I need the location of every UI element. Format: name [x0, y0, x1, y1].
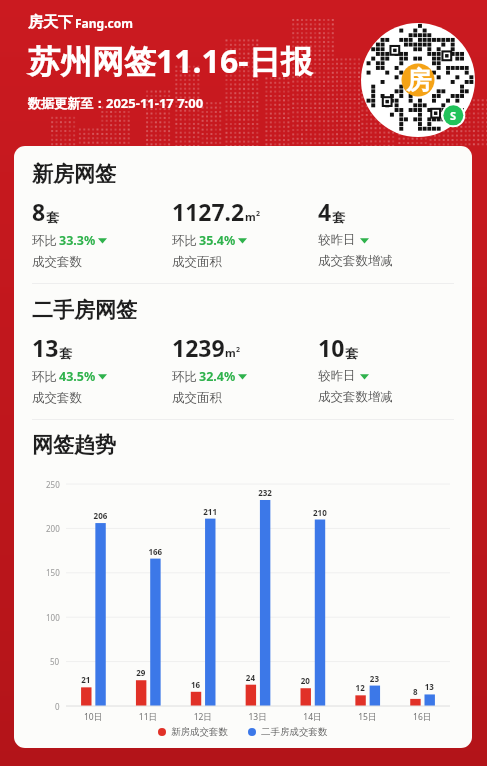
button[interactable]: 1127.2	[172, 196, 318, 270]
staticText: 新房成交套数	[171, 726, 228, 738]
button[interactable]: 二手房网签	[32, 297, 137, 323]
staticText: 成交套数增减	[318, 389, 393, 405]
staticText: 房	[406, 65, 431, 96]
staticText: 成交面积	[172, 254, 222, 270]
button[interactable]: 8	[32, 196, 172, 270]
staticText: 1127.2	[172, 196, 245, 227]
staticText: m	[225, 345, 236, 360]
button[interactable]: 10	[318, 332, 454, 405]
staticText: 成交面积	[172, 390, 222, 406]
staticText: 35.4%	[199, 232, 236, 249]
staticText: 环比	[32, 233, 57, 249]
staticText: S	[450, 108, 457, 123]
staticText: 43.5%	[59, 368, 96, 385]
button[interactable]: 新房网签	[32, 161, 116, 187]
staticText: 套	[332, 209, 345, 225]
staticText: 较昨日	[318, 368, 356, 384]
staticText: 环比	[172, 233, 197, 249]
staticText: 套	[345, 345, 358, 361]
staticText: 8	[32, 196, 46, 227]
button[interactable]: 13	[32, 332, 172, 406]
staticText: 数据更新至：2025-11-17 7:00	[28, 94, 204, 112]
button[interactable]: 新房成交套数	[158, 726, 228, 738]
staticText: 环比	[32, 369, 57, 385]
staticText: 二手房成交套数	[261, 726, 328, 738]
staticText: 环比	[172, 369, 197, 385]
staticText: 2	[256, 209, 261, 219]
staticText: 房天下	[28, 13, 73, 32]
staticText: m	[245, 209, 256, 224]
button[interactable]: 网签趋势	[32, 432, 116, 458]
staticText: 套	[59, 345, 72, 361]
staticText: 4	[318, 196, 332, 227]
button[interactable]: 二手房成交套数	[248, 726, 328, 738]
staticText: 成交套数	[32, 254, 82, 270]
staticText: 33.3%	[59, 232, 96, 249]
staticText: 成交套数	[32, 390, 82, 406]
staticText: 较昨日	[318, 232, 356, 248]
staticText: 13	[32, 332, 59, 363]
staticText: 成交套数增减	[318, 253, 393, 269]
staticText: 套	[46, 209, 59, 225]
staticText: 32.4%	[199, 368, 236, 385]
staticText: 1239	[172, 332, 225, 363]
button[interactable]: 1239	[172, 332, 318, 406]
staticText: 2	[236, 345, 241, 355]
staticText: 10	[318, 332, 345, 363]
staticText: 苏州网签11.16-日报	[28, 39, 313, 83]
button[interactable]: 小程序二维码	[361, 23, 475, 137]
staticText: Fang.com	[75, 15, 133, 31]
button[interactable]: 4	[318, 196, 454, 269]
